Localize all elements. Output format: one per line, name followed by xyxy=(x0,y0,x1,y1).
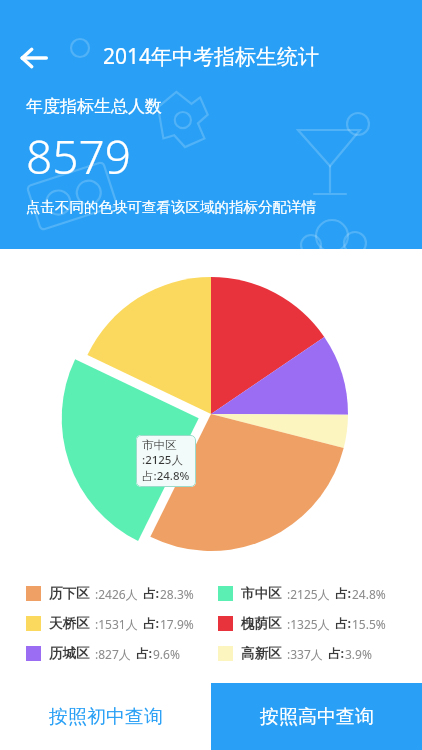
staticText: 市中区 xyxy=(241,585,282,602)
staticText: 天桥区 xyxy=(49,615,90,632)
staticText: 历下区 xyxy=(49,585,90,602)
button[interactable]: 槐荫区 xyxy=(218,615,386,632)
staticText: 占:24.8% xyxy=(142,468,190,484)
staticText: 17.9% xyxy=(160,616,194,632)
staticText: 历城区 xyxy=(49,645,90,662)
button[interactable]: 历下区 xyxy=(26,585,194,602)
staticText: 28.3% xyxy=(160,586,194,602)
staticText: 3.9% xyxy=(345,646,372,662)
staticText: :827人 xyxy=(95,646,131,662)
staticText: 24.8% xyxy=(352,586,386,602)
staticText: 2014年中考指标生统计 xyxy=(103,42,320,71)
staticText: :2125人 xyxy=(287,586,330,602)
button[interactable]: 高新区 xyxy=(218,645,372,662)
button[interactable]: 按照初中查询 xyxy=(0,683,211,750)
staticText: 年度指标生总人数 xyxy=(26,96,162,117)
staticText: 占: xyxy=(335,615,352,632)
staticText: 槐荫区 xyxy=(241,615,282,632)
staticText: 市中区 xyxy=(142,438,177,452)
staticText: 9.6% xyxy=(153,646,180,662)
staticText: 占: xyxy=(136,645,153,662)
staticText: :1325人 xyxy=(287,616,330,632)
button[interactable]: 市中区 xyxy=(218,585,386,602)
staticText: 点击不同的色块可查看该区域的指标分配详情 xyxy=(26,198,316,216)
staticText: 占: xyxy=(143,615,160,632)
staticText: 按照初中查询 xyxy=(49,705,163,729)
button[interactable]: 天桥区 xyxy=(26,615,194,632)
staticText: :2125人 xyxy=(142,452,183,468)
staticText: 占: xyxy=(335,585,352,602)
staticText: :2426人 xyxy=(95,586,138,602)
staticText: 占: xyxy=(328,645,345,662)
staticText: 15.5% xyxy=(352,616,386,632)
button[interactable]: 历城区 xyxy=(26,645,180,662)
staticText: :337人 xyxy=(287,646,323,662)
staticText: 8579 xyxy=(26,125,132,188)
staticText: 高新区 xyxy=(241,645,282,662)
staticText: 按照高中查询 xyxy=(260,705,374,729)
button[interactable]: 返回 xyxy=(10,34,58,82)
staticText: 占: xyxy=(143,585,160,602)
button[interactable]: 按照高中查询 xyxy=(211,683,422,750)
staticText: :1531人 xyxy=(95,616,138,632)
